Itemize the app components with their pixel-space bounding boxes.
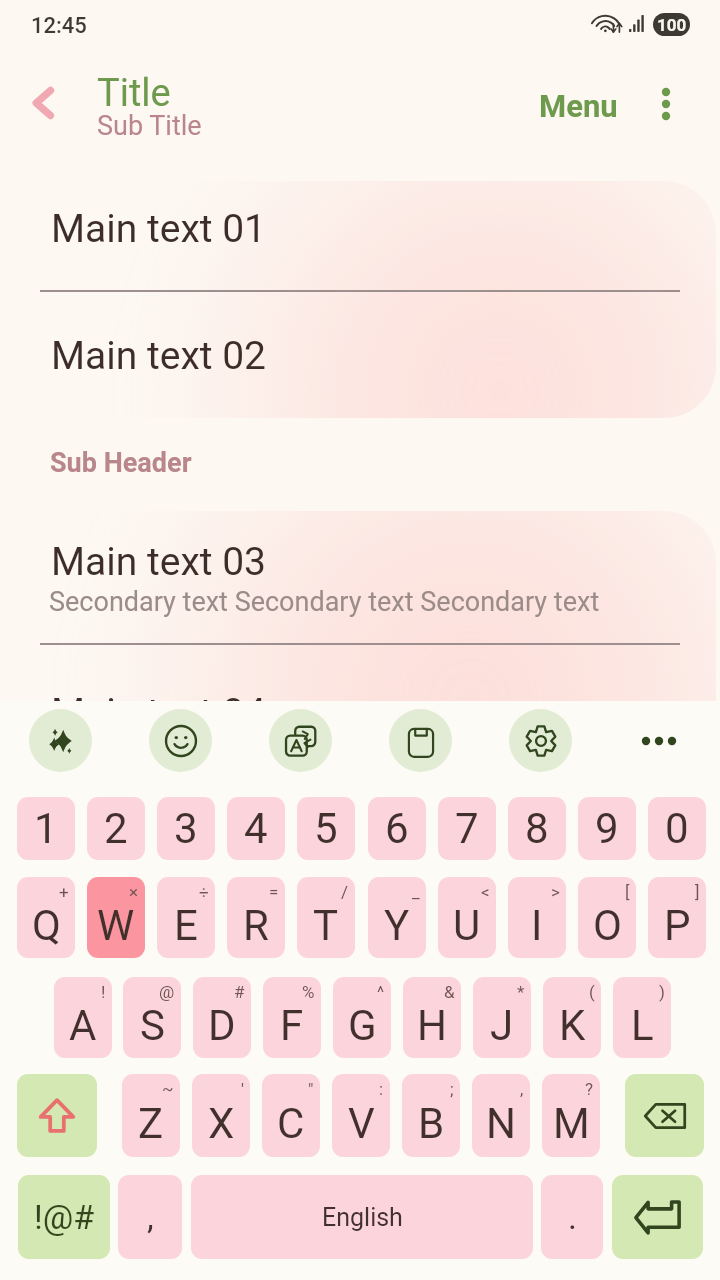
- button[interactable]: ;: [402, 1074, 460, 1157]
- staticText: :: [379, 1079, 384, 1099]
- button[interactable]: 8: [508, 797, 566, 860]
- staticText: [: [625, 882, 630, 902]
- button[interactable]: 2: [87, 797, 145, 860]
- staticText: Z: [138, 1099, 164, 1148]
- button[interactable]: ~: [122, 1074, 180, 1157]
- button[interactable]: 5: [297, 797, 355, 860]
- staticText: <: [481, 882, 490, 902]
- staticText: +: [59, 882, 69, 902]
- button[interactable]: [: [578, 877, 636, 958]
- staticText: V: [348, 1099, 375, 1148]
- button[interactable]: %: [263, 977, 321, 1058]
- button[interactable]: ): [613, 977, 671, 1058]
- button[interactable]: Backspace: [625, 1074, 704, 1157]
- button[interactable]: Translate: [269, 709, 332, 772]
- staticText: 100: [657, 15, 687, 35]
- button[interactable]: More options: [638, 76, 694, 132]
- button[interactable]: ": [262, 1074, 320, 1157]
- staticText: H: [417, 1001, 447, 1050]
- button[interactable]: 7: [438, 797, 496, 860]
- staticText: D: [208, 1001, 236, 1050]
- button[interactable]: ^: [333, 977, 391, 1058]
- button[interactable]: *: [473, 977, 531, 1058]
- button[interactable]: ÷: [157, 877, 215, 958]
- button[interactable]: =: [227, 877, 285, 958]
- button[interactable]: +: [17, 877, 75, 958]
- button[interactable]: Settings: [509, 709, 572, 772]
- button[interactable]: 1: [17, 797, 75, 860]
- button[interactable]: !@#: [18, 1175, 110, 1259]
- staticText: E: [174, 901, 198, 950]
- staticText: *: [517, 982, 525, 1002]
- staticText: ^: [377, 982, 385, 1002]
- button[interactable]: Enter: [612, 1175, 703, 1259]
- button[interactable]: _: [368, 877, 426, 958]
- button[interactable]: /: [297, 877, 355, 958]
- staticText: X: [208, 1099, 235, 1148]
- button[interactable]: .: [541, 1175, 603, 1259]
- staticText: U: [453, 901, 481, 950]
- staticText: Main text 01: [51, 206, 267, 252]
- button[interactable]: ,: [472, 1074, 530, 1157]
- button[interactable]: >: [508, 877, 566, 958]
- staticText: J: [490, 1001, 514, 1050]
- button[interactable]: Main text 01: [0, 190, 720, 280]
- button[interactable]: Clipboard: [389, 709, 452, 772]
- staticText: M: [553, 1099, 590, 1148]
- staticText: W: [97, 901, 135, 950]
- button[interactable]: Main text 04: [0, 665, 720, 701]
- button[interactable]: Main text 02: [0, 315, 720, 405]
- button[interactable]: 4: [227, 797, 285, 860]
- staticText: !: [101, 982, 106, 1002]
- staticText: P: [664, 901, 691, 950]
- button[interactable]: 0: [648, 797, 706, 860]
- button[interactable]: <: [438, 877, 496, 958]
- button[interactable]: Menu: [528, 82, 628, 130]
- staticText: I: [531, 901, 543, 950]
- staticText: 7: [455, 804, 479, 853]
- button[interactable]: Magic compose: [29, 709, 92, 772]
- staticText: C: [277, 1099, 305, 1148]
- button[interactable]: 9: [578, 797, 636, 860]
- button[interactable]: ,: [118, 1175, 182, 1259]
- staticText: B: [418, 1099, 445, 1148]
- button[interactable]: ]: [648, 877, 706, 958]
- button[interactable]: Back: [14, 74, 72, 132]
- button[interactable]: ?: [542, 1074, 600, 1157]
- staticText: ~: [162, 1079, 174, 1099]
- staticText: R: [243, 901, 269, 950]
- button[interactable]: &: [403, 977, 461, 1058]
- button[interactable]: More: [630, 712, 688, 770]
- staticText: @: [159, 982, 175, 1002]
- staticText: !@#: [34, 1197, 95, 1237]
- staticText: &: [444, 982, 455, 1002]
- staticText: Title: [97, 71, 171, 116]
- button[interactable]: Emoji: [149, 709, 212, 772]
- staticText: K: [559, 1001, 586, 1050]
- staticText: ;: [450, 1079, 454, 1099]
- button[interactable]: #: [193, 977, 251, 1058]
- button[interactable]: 3: [157, 797, 215, 860]
- staticText: ': [241, 1079, 244, 1099]
- button[interactable]: Shift: [17, 1074, 97, 1157]
- staticText: ,: [147, 1197, 154, 1237]
- button[interactable]: English: [191, 1175, 533, 1259]
- staticText: ×: [129, 882, 139, 902]
- button[interactable]: @: [123, 977, 181, 1058]
- staticText: Main text 04: [51, 690, 267, 726]
- staticText: O: [593, 901, 622, 950]
- staticText: ?: [585, 1079, 594, 1099]
- staticText: N: [486, 1099, 516, 1148]
- button[interactable]: (: [543, 977, 601, 1058]
- staticText: 1: [34, 804, 58, 853]
- button[interactable]: ×: [87, 877, 145, 958]
- staticText: Main text 03: [51, 539, 267, 585]
- button[interactable]: :: [332, 1074, 390, 1157]
- button[interactable]: !: [54, 977, 112, 1058]
- staticText: F: [280, 1001, 304, 1050]
- button[interactable]: ': [192, 1074, 250, 1157]
- button[interactable]: 6: [368, 797, 426, 860]
- staticText: 12:45: [31, 13, 87, 39]
- staticText: Sub Header: [50, 447, 192, 479]
- button[interactable]: Main text 03: [0, 520, 720, 630]
